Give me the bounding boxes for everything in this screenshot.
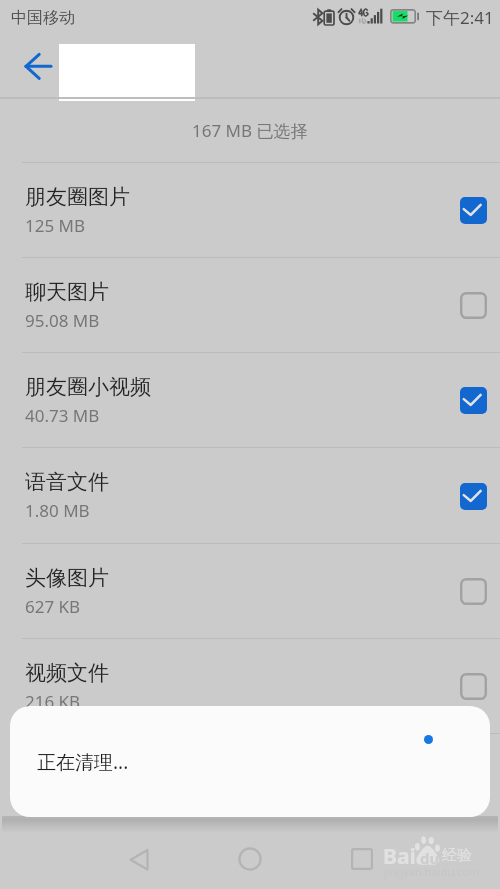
button[interactable]: Select [451,378,495,422]
staticText: 216 KB [25,690,81,713]
staticText: Bai [383,842,416,871]
button[interactable]: Back [13,41,64,92]
button[interactable]: 视频文件 [0,639,500,733]
staticText: 朋友圈小视频 [25,374,151,400]
staticText: 中国移动 [11,8,75,28]
staticText: 语音文件 [25,469,109,495]
staticText: du [420,848,440,868]
button[interactable]: Select [451,474,495,518]
button[interactable]: Select [451,569,495,613]
staticText: 头像图片 [25,565,109,591]
staticText: 40.73 MB [25,404,100,427]
button[interactable]: Select [451,664,495,708]
button[interactable]: Select [451,283,495,327]
button[interactable]: Back [112,832,165,885]
button[interactable]: Home [223,832,276,885]
button[interactable]: 朋友圈小视频 [0,353,500,447]
staticText: 1.80 MB [25,499,90,522]
staticText: 167 MB 已选择 [192,119,308,142]
button[interactable]: 聊天图片 [0,258,500,352]
staticText: 正在清理... [37,749,129,775]
staticText: 聊天图片 [25,279,109,305]
button[interactable]: 头像图片 [0,544,500,638]
button[interactable]: Select [451,188,495,232]
button[interactable]: 朋友圈图片 [0,163,500,257]
staticText: 627 KB [25,595,81,618]
staticText: 朋友圈图片 [25,184,130,210]
staticText: 95.08 MB [25,309,100,332]
button[interactable]: 语音文件 [0,448,500,543]
staticText: 下午2:41 [426,6,494,29]
button[interactable]: Recents [335,832,388,885]
staticText: 视频文件 [25,660,109,686]
staticText: 经验 [442,846,472,865]
staticText: 125 MB [25,214,86,237]
